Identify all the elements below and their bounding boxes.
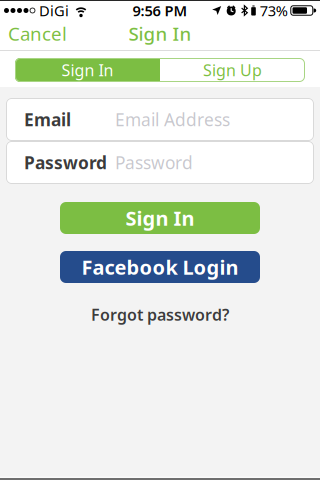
staticText: Sign In	[125, 205, 194, 231]
button[interactable]: Sign In	[60, 202, 260, 234]
staticText: Forgot password?	[91, 304, 229, 325]
button[interactable]: Facebook Login	[60, 251, 260, 283]
staticText: 9:56 PM	[132, 1, 187, 20]
staticText: Password	[115, 151, 193, 174]
staticText: Password	[24, 151, 107, 174]
staticText: DiGi	[39, 1, 69, 20]
button[interactable]: Email	[6, 98, 314, 141]
button[interactable]: Sign Up	[160, 58, 305, 82]
button[interactable]: Forgot password?	[91, 304, 229, 325]
button[interactable]: Password	[6, 141, 314, 184]
staticText: Email Address	[115, 108, 230, 131]
staticText: Sign In	[128, 21, 191, 46]
staticText: Facebook Login	[81, 254, 238, 280]
button[interactable]: Cancel	[0, 21, 67, 46]
button[interactable]: Sign In	[15, 58, 160, 82]
staticText: 73%	[260, 1, 288, 20]
staticText: Cancel	[8, 21, 67, 46]
staticText: Sign In	[61, 59, 113, 81]
staticText: Email	[24, 108, 71, 131]
staticText: Sign Up	[203, 59, 262, 81]
